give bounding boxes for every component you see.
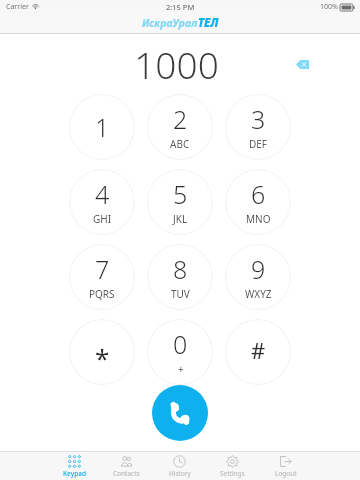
button[interactable]: 7 <box>69 244 135 310</box>
staticText: JKL <box>173 212 188 226</box>
button[interactable]: History <box>153 452 206 480</box>
staticText: + <box>178 362 184 376</box>
staticText: Logout <box>275 469 297 478</box>
staticText: ИскраУрал <box>142 16 198 30</box>
button[interactable]: Logout <box>259 452 312 480</box>
button[interactable]: * <box>69 319 135 385</box>
staticText: DEF <box>249 137 268 151</box>
staticText: Settings <box>220 469 245 478</box>
staticText: ABC <box>170 137 190 151</box>
staticText: PQRS <box>89 287 115 301</box>
staticText: 9 <box>251 252 266 286</box>
staticText: History <box>169 469 191 478</box>
staticText: # <box>251 335 266 365</box>
staticText: 2:15 PM <box>166 2 195 12</box>
staticText: 0 <box>173 327 188 361</box>
staticText: 1000 <box>134 39 219 89</box>
button[interactable]: Contacts <box>100 452 153 480</box>
button[interactable]: Settings <box>206 452 259 480</box>
button[interactable]: 0 <box>147 319 213 385</box>
staticText: 4 <box>95 177 110 211</box>
button[interactable]: 2 <box>147 94 213 160</box>
button[interactable]: Keypad <box>48 452 100 480</box>
staticText: 7 <box>95 252 110 286</box>
staticText: Contacts <box>113 469 140 478</box>
staticText: ТЕЛ <box>198 15 219 31</box>
button[interactable]: Call <box>152 385 208 441</box>
button[interactable]: 1 <box>69 94 135 160</box>
button[interactable]: 9 <box>225 244 291 310</box>
staticText: 1 <box>95 110 110 144</box>
staticText: WXYZ <box>245 287 272 301</box>
button[interactable]: 8 <box>147 244 213 310</box>
button[interactable]: 6 <box>225 169 291 235</box>
button[interactable]: 5 <box>147 169 213 235</box>
staticText: MNO <box>246 212 271 226</box>
button[interactable]: 3 <box>225 94 291 160</box>
button[interactable]: Delete <box>291 53 313 75</box>
staticText: GHI <box>93 212 112 226</box>
staticText: 3 <box>251 102 266 136</box>
staticText: 8 <box>173 252 188 286</box>
staticText: Carrier <box>6 2 29 12</box>
staticText: Keypad <box>63 469 86 478</box>
staticText: 5 <box>173 177 188 211</box>
staticText: * <box>95 340 110 375</box>
button[interactable]: 4 <box>69 169 135 235</box>
staticText: TUV <box>171 287 190 301</box>
staticText: 100% <box>320 2 338 12</box>
staticText: 6 <box>251 177 266 211</box>
button[interactable]: # <box>225 319 291 385</box>
staticText: 2 <box>173 102 188 136</box>
